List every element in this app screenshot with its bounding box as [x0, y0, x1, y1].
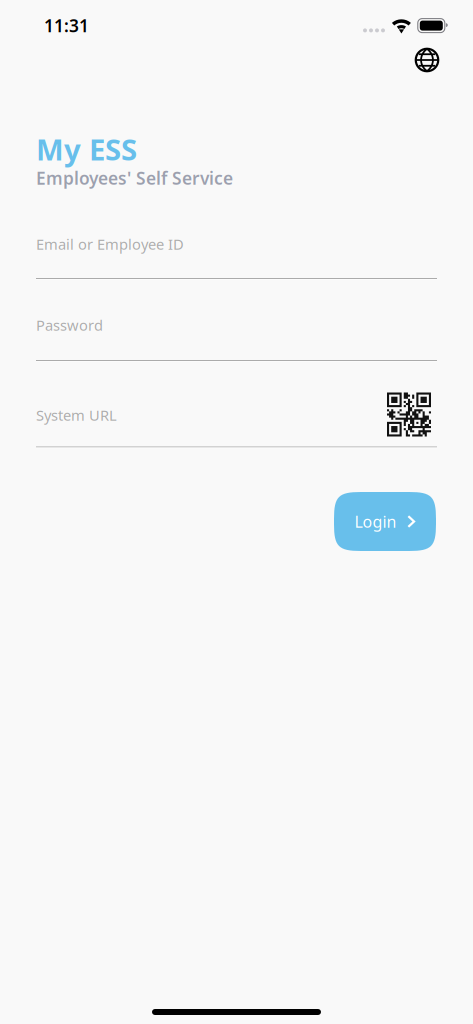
button[interactable]: Scan QR code [383, 388, 435, 440]
staticText: Employees' Self Service [36, 166, 233, 189]
button[interactable]: Change language [405, 38, 449, 82]
staticText: Password [36, 315, 103, 335]
staticText: System URL [36, 405, 117, 425]
staticText: Email or Employee ID [36, 234, 184, 254]
staticText: Login [355, 511, 397, 532]
button[interactable]: Login [334, 492, 436, 551]
staticText: My ESS [36, 129, 137, 168]
staticText: 11:31 [44, 14, 89, 37]
